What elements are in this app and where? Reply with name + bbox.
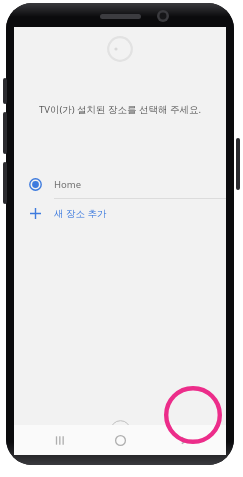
button[interactable]: Recents (50, 430, 70, 450)
staticText: ? (119, 425, 123, 436)
button[interactable]: Home (110, 430, 130, 450)
button[interactable]: 새 장소 추가 (14, 199, 226, 227)
button[interactable]: Home (14, 170, 226, 198)
staticText: 새 장소 추가 (54, 207, 107, 220)
staticText: TV이(가) 설치된 장소를 선택해 주세요. (28, 103, 212, 116)
button[interactable]: Next highlighted (164, 386, 222, 444)
button[interactable]: 다음 (180, 418, 216, 442)
staticText: Home (54, 178, 82, 191)
button[interactable]: Back (174, 430, 194, 450)
staticText: 다음 (189, 425, 207, 436)
button[interactable]: Help (110, 420, 131, 441)
